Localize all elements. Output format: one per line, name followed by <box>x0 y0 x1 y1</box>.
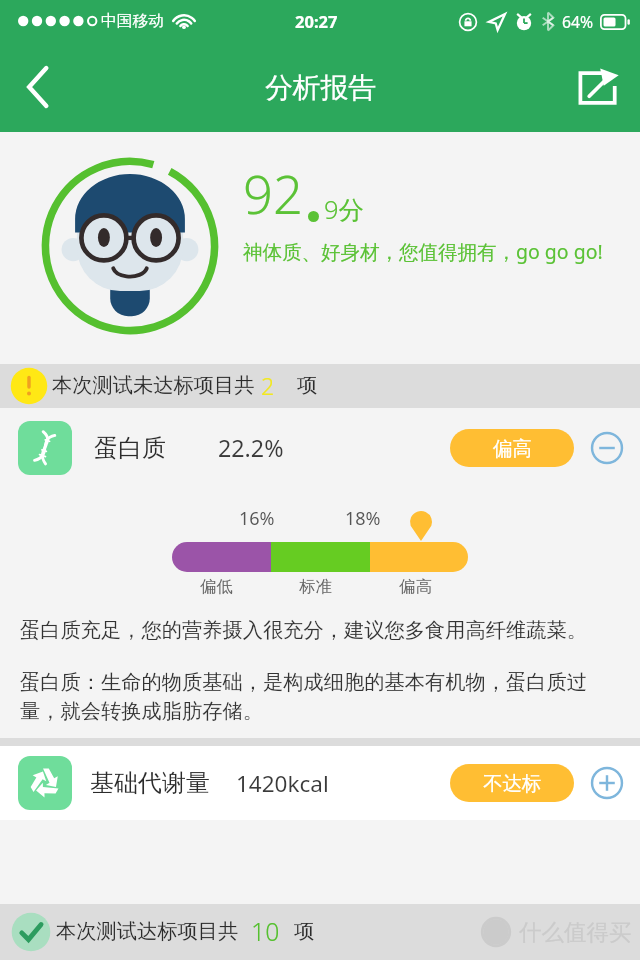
staticText: 标准 <box>299 576 332 597</box>
button[interactable]: 蛋白质 <box>18 408 624 488</box>
button[interactable]: Share <box>556 47 640 127</box>
button[interactable]: Collapse <box>590 431 624 465</box>
staticText: 本次测试达标项目共 <box>56 919 239 945</box>
staticText: 20:27 <box>295 10 338 32</box>
button[interactable]: 本次测试未达标项目共 <box>10 364 640 408</box>
staticText: 不达标 <box>483 771 542 796</box>
staticText: 什么值得买 <box>519 918 632 946</box>
staticText: 22.2% <box>218 432 284 464</box>
staticText: 分析报告 <box>265 70 376 105</box>
button[interactable]: 基础代谢量 <box>18 746 624 820</box>
staticText: 偏高 <box>399 576 432 597</box>
staticText: 蛋白质充足，您的营养摄入很充分，建议您多食用高纤维蔬菜。 <box>20 618 587 644</box>
staticText: 9分 <box>324 192 365 227</box>
staticText: 项 <box>297 373 318 399</box>
staticText: 92 <box>243 158 303 230</box>
staticText: 1420kcal <box>236 768 329 799</box>
staticText: 偏低 <box>200 576 233 597</box>
staticText: 基础代谢量 <box>90 768 210 798</box>
staticText: 中国移动 <box>101 11 164 31</box>
staticText: 蛋白质 <box>94 433 166 463</box>
staticText: 项 <box>294 919 315 945</box>
staticText: 本次测试未达标项目共 <box>52 373 255 399</box>
button[interactable]: 不达标 <box>450 764 574 802</box>
staticText: 2 <box>261 370 275 402</box>
button[interactable]: 本次测试达标项目共 <box>10 904 632 960</box>
staticText: 偏高 <box>493 436 532 461</box>
staticText: 64% <box>562 11 594 32</box>
staticText: 神体质、好身材，您值得拥有，go go go! <box>243 238 603 265</box>
staticText: 蛋白质：生命的物质基础，是构成细胞的基本有机物，蛋白质过量，就会转换成脂肪存储。 <box>20 670 622 724</box>
button[interactable]: Expand <box>590 766 624 800</box>
button[interactable]: 偏高 <box>450 429 574 467</box>
button[interactable]: Back <box>0 47 76 127</box>
staticText: 10 <box>251 915 280 949</box>
staticText: 16% <box>239 506 275 531</box>
staticText: 18% <box>345 506 381 531</box>
